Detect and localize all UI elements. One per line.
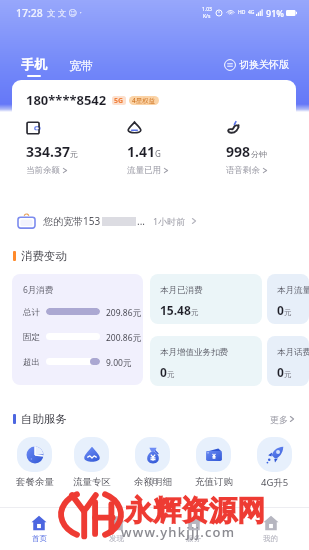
staticText: 9.00元: [106, 357, 132, 366]
staticText: 元: [284, 370, 292, 379]
button[interactable]: 本月增值业务扣费: [150, 336, 262, 386]
staticText: 4G: [248, 9, 255, 16]
button[interactable]: 1.41: [127, 121, 168, 176]
staticText: 6月消费: [23, 284, 54, 296]
button[interactable]: 充值订购: [183, 437, 244, 488]
button[interactable]: 334.37: [26, 121, 78, 176]
staticText: 15.48: [160, 302, 191, 318]
staticText: 更多: [270, 414, 288, 424]
button[interactable]: 6月消费: [12, 274, 143, 385]
button[interactable]: 流量专区: [61, 437, 122, 488]
staticText: HD: [238, 9, 246, 16]
staticText: 4星权益: [132, 96, 156, 105]
staticText: 固定: [23, 332, 40, 341]
staticText: 1小时前: [153, 215, 186, 227]
staticText: 17:28: [16, 6, 43, 20]
staticText: 语音剩余: [226, 165, 260, 176]
staticText: 0: [277, 364, 284, 380]
staticText: 充值订购: [195, 476, 233, 488]
staticText: 本月增值业务扣费: [160, 347, 228, 358]
staticText: 334.37: [26, 142, 70, 161]
staticText: 自助服务: [21, 412, 67, 426]
staticText: 分钟: [251, 149, 267, 159]
button[interactable]: 998: [226, 121, 267, 176]
staticText: 本月流量: [277, 285, 309, 296]
staticText: 本月话费: [277, 347, 309, 358]
button[interactable]: 您的宽带153: [17, 211, 196, 231]
staticText: 200.86元: [106, 332, 142, 341]
button[interactable]: 手机: [19, 55, 49, 78]
button[interactable]: 宽带: [67, 57, 95, 74]
staticText: 0: [277, 302, 284, 318]
staticText: 本月已消费: [160, 285, 203, 296]
button[interactable]: 本月已消费: [150, 274, 262, 324]
staticText: 您的宽带153: [43, 214, 101, 228]
staticText: 流量已用: [127, 165, 161, 176]
button[interactable]: 4G升5: [244, 437, 305, 489]
staticText: 当前余额: [26, 165, 60, 176]
staticText: 文 文 ☺ ·: [47, 7, 82, 19]
staticText: 总计: [23, 307, 40, 316]
staticText: 消费变动: [21, 249, 67, 263]
staticText: www.yhkjjj.com: [121, 523, 236, 541]
staticText: 元: [167, 370, 175, 379]
staticText: 1.41: [127, 142, 155, 161]
button[interactable]: 切换关怀版: [222, 56, 291, 73]
staticText: 0: [160, 364, 167, 380]
staticText: 手机: [21, 56, 47, 72]
staticText: G: [155, 148, 161, 159]
staticText: 流量专区: [73, 476, 111, 488]
staticText: 1.03: [202, 6, 212, 13]
staticText: 余额明细: [134, 476, 172, 488]
staticText: 元: [70, 149, 78, 159]
staticText: 切换关怀版: [239, 58, 289, 71]
staticText: 4G升5: [261, 476, 289, 489]
staticText: 超出: [23, 357, 40, 366]
button[interactable]: 发现: [78, 508, 155, 550]
staticText: 服务: [186, 534, 201, 543]
button[interactable]: 更多: [268, 412, 296, 426]
staticText: 宽带: [69, 58, 93, 73]
button[interactable]: 余额明细: [122, 437, 183, 488]
button[interactable]: 180****8542: [12, 80, 296, 191]
staticText: 元: [284, 308, 292, 317]
staticText: 180****8542: [26, 91, 107, 109]
staticText: 91%: [266, 7, 284, 19]
staticText: 永辉资源网: [125, 493, 265, 528]
staticText: 209.86元: [106, 307, 142, 316]
staticText: 首页: [32, 534, 47, 543]
button[interactable]: 首页: [0, 508, 78, 550]
staticText: 发现: [109, 534, 124, 543]
staticText: 5G: [114, 96, 124, 105]
button[interactable]: 本月话费: [267, 336, 309, 386]
button[interactable]: 本月流量: [267, 274, 309, 324]
button[interactable]: 我的: [232, 508, 309, 550]
staticText: 998: [226, 142, 251, 161]
button[interactable]: 套餐余量: [8, 437, 61, 488]
staticText: 套餐余量: [16, 476, 54, 488]
staticText: 我的: [263, 534, 278, 543]
staticText: K/s: [203, 13, 211, 20]
staticText: 元: [191, 308, 199, 317]
button[interactable]: 服务: [155, 508, 232, 550]
staticText: ...: [137, 214, 146, 228]
